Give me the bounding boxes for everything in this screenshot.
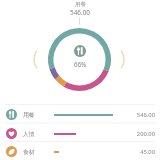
other: Dining category — [74, 45, 86, 57]
staticText: 546.00 — [136, 111, 155, 119]
staticText: 食材 — [23, 148, 35, 155]
staticText: 用餐 — [23, 111, 35, 118]
staticText: 66% — [74, 60, 87, 68]
button[interactable]: 用餐 — [0, 105, 160, 124]
staticText: 45.00 — [140, 148, 155, 156]
staticText: 200.00 — [136, 130, 155, 138]
button[interactable]: 食材 — [0, 143, 160, 160]
button[interactable]: 人情 — [0, 124, 160, 143]
staticText: 人情 — [23, 130, 35, 137]
staticText: 546.00 — [70, 8, 90, 17]
staticText: 用餐 — [75, 1, 86, 8]
